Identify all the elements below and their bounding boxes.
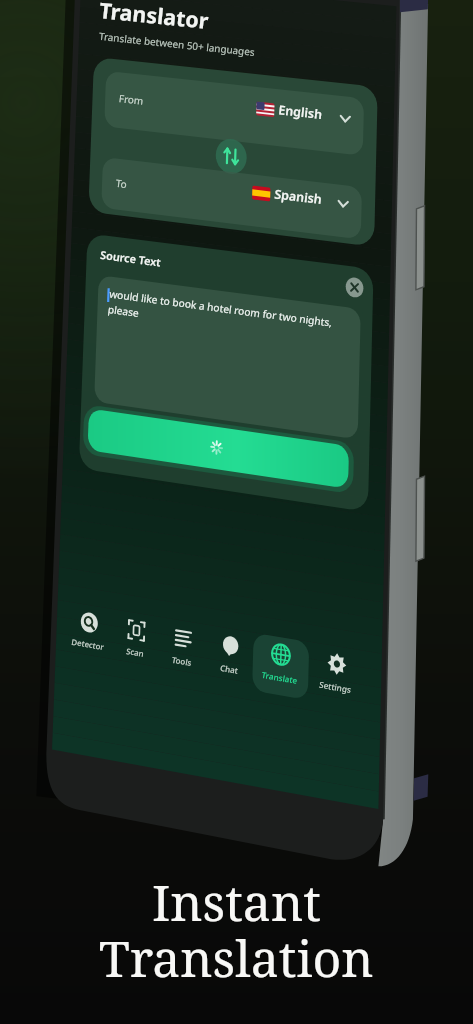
button[interactable]: Select source language English	[208, 102, 340, 148]
button[interactable]: Swap languages	[182, 164, 229, 215]
button[interactable]: Select target language Spanish	[208, 217, 340, 263]
button[interactable]: Clear source text	[310, 323, 345, 359]
